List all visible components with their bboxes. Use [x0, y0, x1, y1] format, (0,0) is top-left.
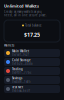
- staticText: 0x55aa…6e3f: [12, 89, 30, 92]
- staticText: Unlimited Wallets: [4, 3, 39, 9]
- button[interactable]: Cold Storage: [4, 58, 60, 66]
- staticText: Wallets: [4, 44, 14, 47]
- staticText: Create as many wallets as you need, all …: [4, 10, 47, 17]
- staticText: Total balance: [25, 24, 42, 27]
- button[interactable]: Test Net: [4, 85, 60, 93]
- button[interactable]: Trading: [4, 67, 60, 75]
- staticText: 0xc4d8…1a05: [12, 80, 31, 83]
- staticText: Main Wallet: [12, 49, 29, 53]
- button[interactable]: Main Wallet: [4, 49, 60, 57]
- staticText: Cold Storage: [12, 58, 31, 62]
- staticText: 0x7a3f…9c21: [12, 53, 30, 56]
- staticText: Savings: [12, 76, 22, 80]
- staticText: Trading: [12, 67, 23, 71]
- staticText: 0x1b2e…44da: [12, 62, 32, 65]
- staticText: $17.25: [24, 31, 40, 38]
- button[interactable]: Savings: [4, 76, 60, 84]
- staticText: Test Net: [12, 85, 23, 89]
- staticText: 0x9f01…77bc: [12, 71, 31, 74]
